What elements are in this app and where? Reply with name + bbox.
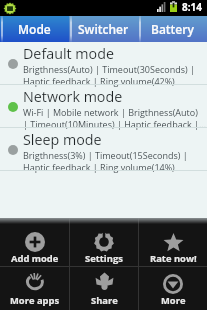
- button[interactable]: Battery: [138, 16, 207, 42]
- other: More apps: [25, 272, 45, 292]
- staticText: Share: [91, 294, 118, 307]
- button[interactable]: Settings: [70, 218, 138, 266]
- staticText: Sleep mode: [23, 130, 102, 149]
- button[interactable]: Rate now: [139, 218, 207, 266]
- button[interactable]: Add mode: [0, 218, 69, 266]
- other: Share: [95, 272, 114, 291]
- other: Rate now: [163, 234, 184, 251]
- staticText: Add mode: [11, 252, 59, 265]
- button[interactable]: More apps: [0, 267, 69, 310]
- staticText: Switcher: [78, 21, 129, 37]
- button[interactable]: Network mode: [0, 85, 207, 128]
- staticText: More: [161, 294, 186, 307]
- staticText: Haptic feedback | Ring volume(14%): [23, 161, 175, 173]
- button[interactable]: Share: [70, 267, 138, 310]
- button[interactable]: Switcher: [69, 16, 138, 42]
- staticText: More apps: [10, 294, 60, 307]
- staticText: | Timeout(10Minutes) | Haptic feedback |…: [23, 118, 207, 130]
- staticText: Network mode: [23, 87, 123, 106]
- button[interactable]: Sleep mode: [0, 128, 207, 171]
- staticText: Rate now!: [150, 252, 197, 265]
- button[interactable]: Default mode: [0, 42, 207, 85]
- staticText: 8:14: [182, 0, 203, 14]
- staticText: Default mode: [23, 44, 114, 63]
- staticText: Haptic feedback | Ring volume(42%): [23, 75, 175, 87]
- other: More: [163, 274, 183, 294]
- staticText: Battery: [151, 21, 194, 37]
- staticText: Settings: [85, 252, 123, 265]
- staticText: Mode: [18, 21, 51, 37]
- button[interactable]: Mode: [0, 16, 69, 42]
- staticText: Brigthness(Auto) | Timeout(30Seconds) |: [23, 63, 195, 75]
- other: Add mode: [25, 232, 45, 252]
- other: Settings: [94, 232, 114, 252]
- staticText: Wi-Fi | Mobile network | Brigthness(Auto…: [23, 106, 198, 118]
- button[interactable]: More: [139, 267, 207, 310]
- staticText: Brigthness(3%) | Timeout(15Seconds) |: [23, 149, 188, 161]
